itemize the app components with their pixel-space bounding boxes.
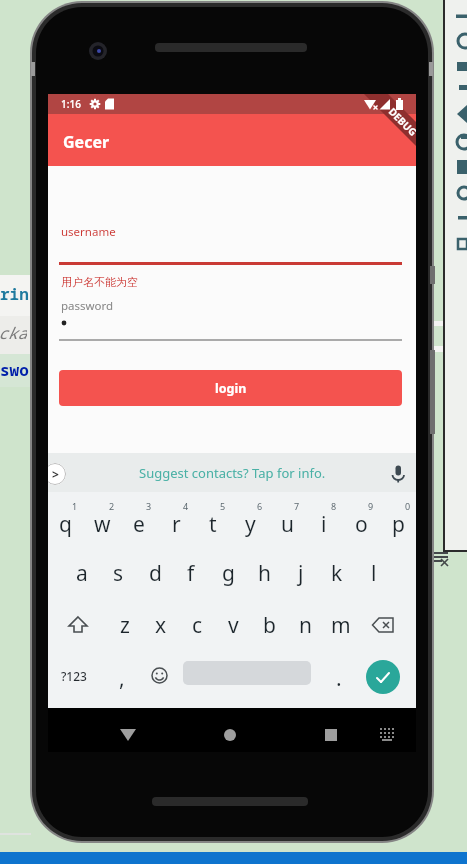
staticText: k [331, 559, 343, 588]
button[interactable]: i [309, 509, 339, 539]
staticText: 2 [109, 500, 115, 512]
staticText: y [245, 510, 256, 539]
staticText: password [61, 298, 114, 314]
button[interactable]: z [110, 610, 140, 640]
button[interactable]: k [322, 558, 352, 588]
staticText: i [321, 510, 327, 539]
staticText: w [94, 510, 111, 539]
button[interactable]: f [176, 558, 206, 588]
staticText: 6 [257, 500, 263, 512]
staticText: DEBUG [386, 104, 416, 139]
staticText: , [119, 664, 125, 690]
staticText: 3 [146, 500, 152, 512]
button[interactable] [366, 660, 400, 694]
button[interactable] [48, 492, 416, 708]
button[interactable]: x [146, 610, 176, 640]
staticText: z [120, 611, 130, 640]
staticText: cka [0, 322, 27, 342]
staticText: l [371, 559, 377, 588]
button[interactable]: Suggest contacts? Tap for info. [48, 453, 416, 493]
staticText: e [133, 510, 145, 539]
button[interactable]: d [140, 558, 170, 588]
staticText: n [299, 611, 312, 640]
button[interactable]: y [235, 509, 265, 539]
staticText: m [331, 611, 351, 640]
button[interactable]: q [50, 509, 80, 539]
button[interactable]: e [124, 509, 154, 539]
button[interactable]: > [48, 463, 66, 485]
staticText: . [336, 664, 342, 690]
staticText: rin [0, 283, 29, 303]
button[interactable]: a [67, 558, 97, 588]
button[interactable] [151, 667, 168, 684]
staticText: h [258, 559, 271, 588]
staticText: b [263, 611, 276, 640]
staticText: o [355, 510, 368, 539]
staticText: a [76, 559, 88, 588]
staticText: 5 [220, 500, 226, 512]
button[interactable]: . [327, 664, 351, 690]
button[interactable]: u [272, 509, 302, 539]
staticText: 用户名不能为空 [61, 275, 138, 289]
staticText: x [155, 611, 167, 640]
staticText: 4 [183, 500, 189, 512]
button[interactable] [48, 114, 416, 166]
staticText: s [113, 559, 124, 588]
staticText: p [392, 510, 405, 539]
staticText: 0 [405, 500, 411, 512]
button[interactable]: c [182, 610, 212, 640]
button[interactable]: b [254, 610, 284, 640]
button[interactable] [68, 616, 88, 634]
button[interactable]: , [110, 664, 134, 690]
staticText: > [52, 466, 59, 482]
staticText: login [215, 380, 247, 397]
staticText: 7 [294, 500, 300, 512]
staticText: c [192, 611, 203, 640]
staticText: Gecer [63, 131, 110, 153]
staticText: swo [0, 359, 29, 379]
staticText: g [222, 559, 235, 588]
button[interactable]: v [218, 610, 248, 640]
staticText: 1 [72, 500, 78, 512]
button[interactable]: n [290, 610, 320, 640]
staticText: v [228, 611, 239, 640]
staticText: r [172, 510, 181, 539]
staticText: ?123 [61, 668, 87, 684]
button[interactable]: s [103, 558, 133, 588]
staticText: 8 [331, 500, 337, 512]
button[interactable]: login [59, 370, 402, 406]
staticText: q [59, 510, 72, 539]
button[interactable]: l [359, 558, 389, 588]
staticText: t [209, 510, 217, 539]
button[interactable]: o [346, 509, 376, 539]
staticText: u [281, 510, 294, 539]
button[interactable]: t [198, 509, 228, 539]
button[interactable]: w [87, 509, 117, 539]
button[interactable]: ?123 [56, 665, 92, 687]
button[interactable]: j [286, 558, 316, 588]
button[interactable]: g [213, 558, 243, 588]
staticText: username [61, 224, 116, 240]
staticText: Suggest contacts? Tap for info. [139, 464, 326, 482]
staticText: j [298, 559, 304, 588]
button[interactable]: h [249, 558, 279, 588]
staticText: 9 [368, 500, 374, 512]
staticText: d [149, 559, 162, 588]
staticText: 1:16 [61, 97, 81, 111]
button[interactable]: r [161, 509, 191, 539]
button[interactable]: m [326, 610, 356, 640]
button[interactable] [372, 617, 394, 633]
staticText: f [187, 559, 195, 588]
button[interactable]: p [383, 509, 413, 539]
